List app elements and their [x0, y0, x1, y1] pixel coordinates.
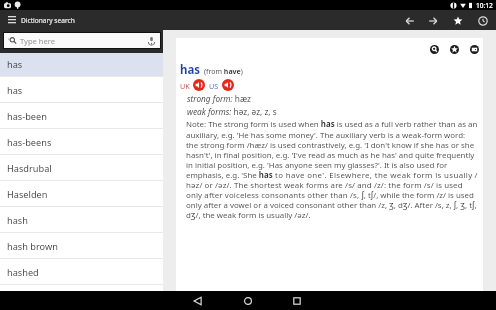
button[interactable]: Add to favourites [450, 45, 459, 54]
button[interactable]: Forward [426, 14, 439, 27]
staticText: hashed [7, 266, 39, 279]
staticText: has-beens [7, 136, 52, 149]
button[interactable]: Favourites [451, 14, 464, 27]
button[interactable]: hash [0, 207, 163, 233]
other: Voice search [147, 36, 156, 45]
button[interactable]: has-beens [0, 129, 163, 155]
button[interactable]: Play pronunciation [222, 79, 234, 91]
button[interactable]: has [0, 77, 163, 103]
button[interactable]: Recents [289, 293, 305, 309]
button[interactable]: Hasdrubal [0, 155, 163, 181]
staticText: strong form: hæz [187, 93, 251, 104]
button[interactable]: Back [403, 14, 416, 27]
staticText: hash [7, 214, 28, 227]
staticText: weak forms: həz, əz, z, s [187, 106, 277, 117]
staticText: has [7, 84, 23, 97]
button[interactable]: Play pronunciation [193, 79, 205, 91]
button[interactable]: has [0, 51, 163, 77]
button[interactable]: History [476, 14, 489, 27]
staticText: Type here [20, 36, 56, 46]
button[interactable]: hashed [0, 259, 163, 285]
staticText: US [209, 81, 219, 91]
staticText: hash brown [7, 240, 58, 253]
staticText: Note: The strong form is used when has i… [186, 119, 478, 221]
staticText: Hasdrubal [7, 162, 52, 175]
staticText: (from have) [204, 67, 243, 77]
staticText: Haselden [7, 188, 48, 201]
staticText: has [7, 58, 23, 71]
button[interactable]: Haselden [0, 181, 163, 207]
button[interactable]: Open navigation menu [6, 14, 18, 26]
button[interactable]: Search [4, 33, 160, 48]
staticText: 10:12 [476, 1, 493, 10]
button[interactable]: Back [190, 293, 206, 309]
staticText: Dictionary search [21, 16, 75, 25]
other: Search [8, 36, 17, 45]
staticText: has-been [7, 110, 47, 123]
button[interactable]: hash brown [0, 233, 163, 259]
staticText: UK [180, 81, 190, 91]
button[interactable]: Home [240, 293, 256, 309]
button[interactable]: Search in entry [430, 45, 439, 54]
staticText: has [180, 62, 201, 78]
button[interactable]: Notes [470, 45, 479, 54]
button[interactable]: has-been [0, 103, 163, 129]
